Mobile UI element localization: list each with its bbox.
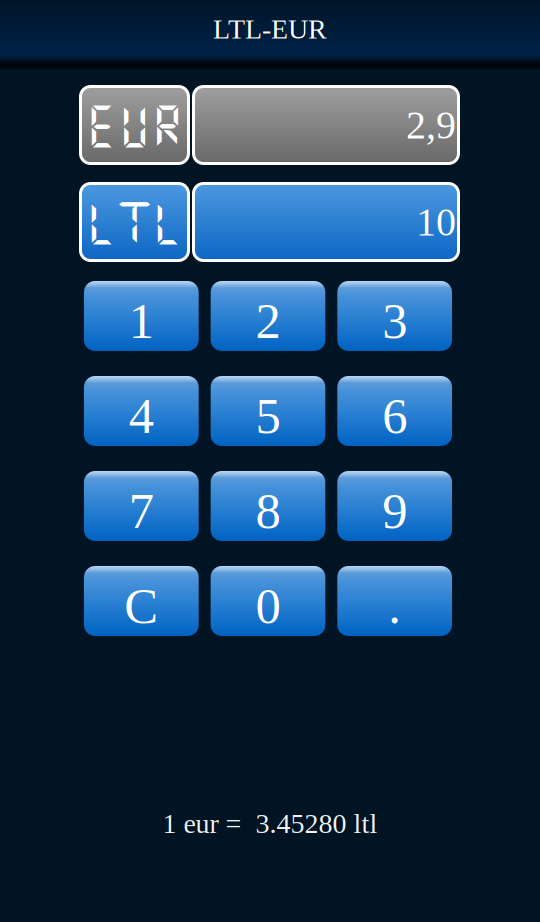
staticText: 8 (255, 483, 280, 539)
button[interactable]: 1 (84, 281, 199, 351)
button[interactable]: EUR (79, 85, 190, 165)
button[interactable]: 8 (211, 471, 325, 541)
staticText: 4 (129, 388, 154, 444)
button[interactable]: . (337, 566, 452, 636)
staticText: 6 (382, 388, 407, 444)
staticText: 1 eur = 3.45280 ltl (162, 808, 377, 839)
staticText: 2,9 (406, 103, 456, 147)
button[interactable]: 9 (337, 471, 452, 541)
staticText: . (388, 578, 401, 634)
button[interactable]: 5 (211, 376, 325, 446)
staticText: 0 (255, 578, 280, 634)
staticText: LTL-EUR (213, 13, 327, 44)
button[interactable]: 2 (211, 281, 325, 351)
staticText: 9 (382, 483, 407, 539)
button[interactable]: 0 (211, 566, 325, 636)
staticText: 7 (129, 483, 154, 539)
staticText: 5 (255, 388, 280, 444)
staticText: 3 (382, 293, 407, 349)
button[interactable]: 7 (84, 471, 199, 541)
button[interactable]: 3 (337, 281, 452, 351)
staticText: 1 (129, 293, 154, 349)
staticText: C (124, 578, 158, 634)
button[interactable]: 4 (84, 376, 199, 446)
staticText: 2 (255, 293, 280, 349)
button[interactable]: C (84, 566, 199, 636)
staticText: 10 (416, 200, 456, 244)
button[interactable]: 6 (337, 376, 452, 446)
staticText: LTL (85, 195, 184, 249)
staticText: EUR (85, 98, 184, 152)
button[interactable]: LTL (79, 182, 190, 262)
